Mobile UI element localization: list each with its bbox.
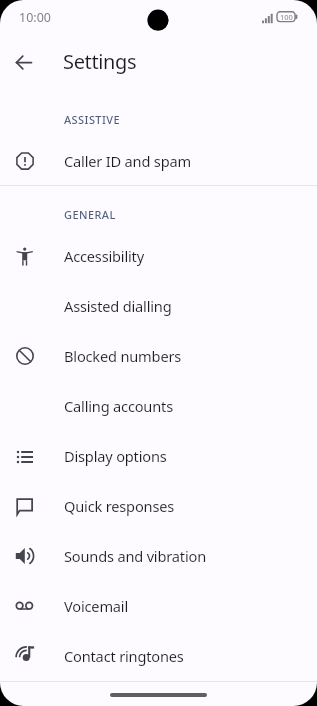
staticText: Sounds and vibration [64, 546, 206, 566]
staticText: 100 [280, 12, 293, 22]
staticText: Accessibility [64, 246, 144, 266]
staticText: Assisted dialling [64, 296, 172, 316]
staticText: Quick responses [64, 496, 175, 516]
button[interactable]: Accessibility [0, 231, 317, 281]
button[interactable]: Assisted dialling [0, 281, 317, 331]
button[interactable]: Display options [0, 431, 317, 481]
button[interactable]: Caller ID and spam [0, 136, 317, 186]
button[interactable]: Quick responses [0, 481, 317, 531]
button[interactable]: Back [8, 46, 41, 79]
button[interactable]: Calling accounts [0, 381, 317, 431]
staticText: ASSISTIVE [64, 112, 120, 127]
staticText: Voicemail [64, 596, 129, 616]
staticText: Blocked numbers [64, 346, 182, 366]
staticText: Settings [63, 48, 137, 75]
button[interactable]: Blocked numbers [0, 331, 317, 381]
staticText: Calling accounts [64, 396, 173, 416]
button[interactable]: Voicemail [0, 581, 317, 631]
staticText: GENERAL [64, 207, 116, 222]
staticText: Display options [64, 446, 167, 466]
staticText: Caller ID and spam [64, 151, 191, 171]
button[interactable]: Sounds and vibration [0, 531, 317, 581]
staticText: 10:00 [19, 9, 51, 26]
button[interactable]: Contact ringtones [0, 631, 317, 681]
staticText: Contact ringtones [64, 646, 184, 666]
